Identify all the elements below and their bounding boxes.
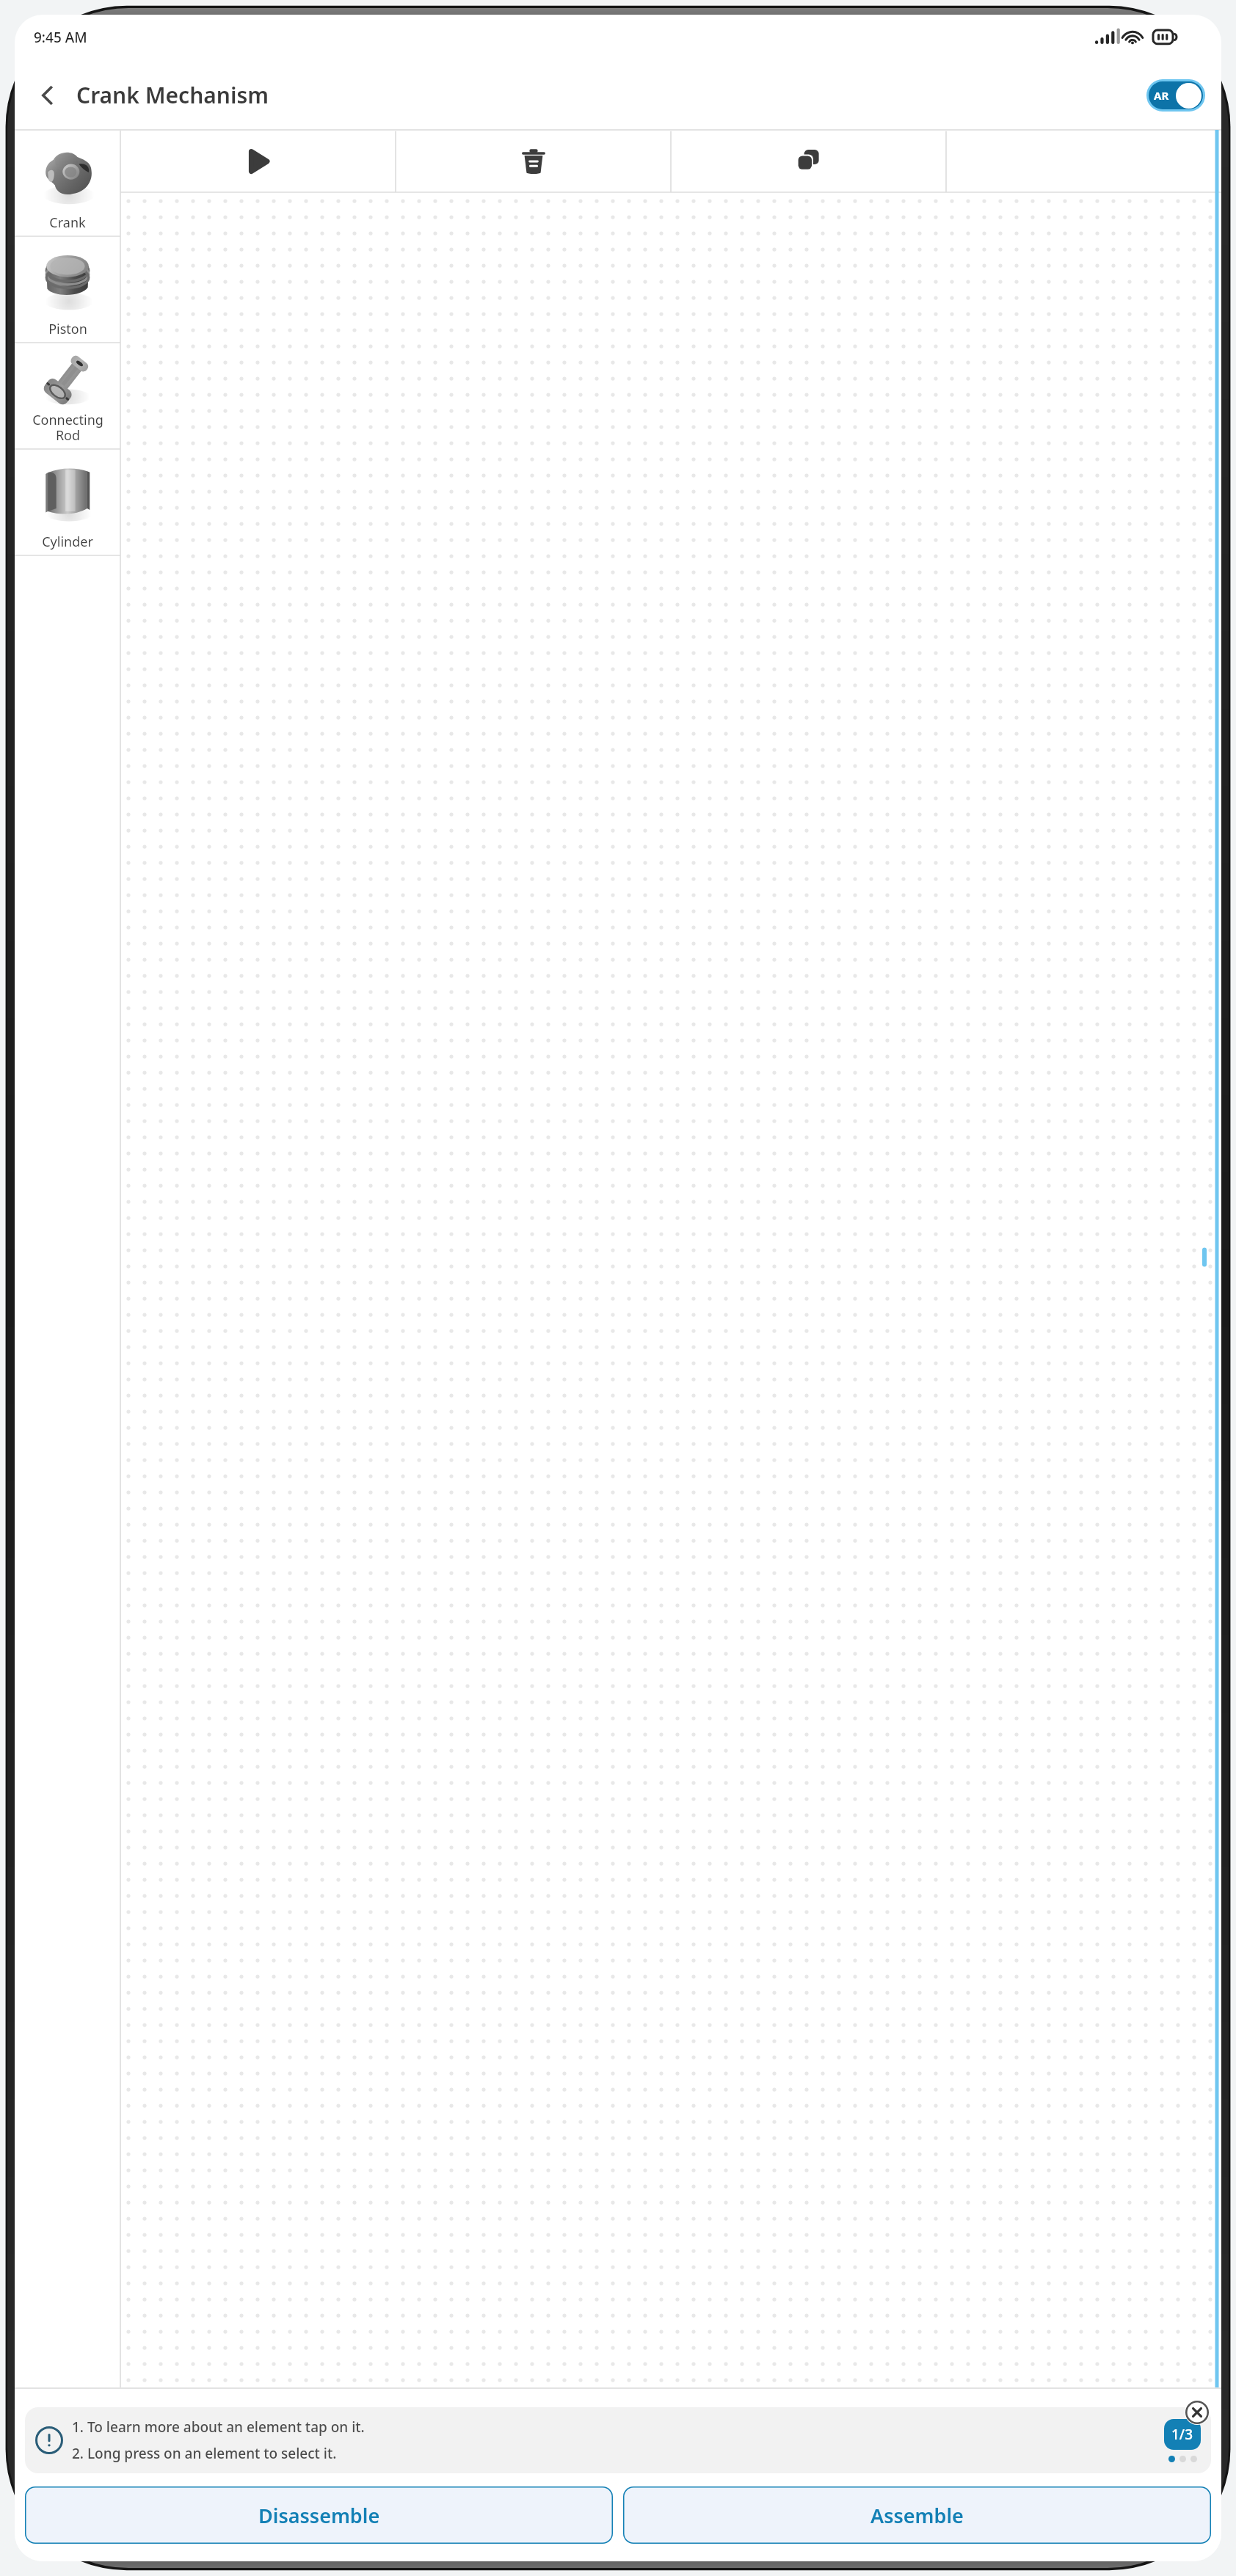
- button[interactable]: Connecting Rod: [15, 343, 120, 449]
- staticText: 1. To learn more about an element tap on…: [72, 2418, 365, 2437]
- staticText: Connecting Rod: [32, 411, 103, 445]
- button[interactable]: Disassemble: [25, 2486, 613, 2544]
- button[interactable]: Duplicate: [671, 130, 946, 192]
- button[interactable]: Back: [28, 75, 69, 116]
- button[interactable]: Play: [120, 130, 396, 192]
- button[interactable]: AR mode toggle: [1149, 81, 1203, 109]
- staticText: Piston: [48, 320, 87, 338]
- staticText: 1/3: [1171, 2425, 1193, 2444]
- button[interactable]: [120, 192, 1221, 2388]
- button[interactable]: Crank: [15, 130, 120, 236]
- button[interactable]: Assemble: [623, 2486, 1211, 2544]
- staticText: Cylinder: [42, 533, 93, 551]
- staticText: Assemble: [870, 2502, 964, 2529]
- button[interactable]: Close tip: [1185, 2400, 1210, 2425]
- button[interactable]: Piston: [15, 236, 120, 343]
- staticText: AR: [1154, 88, 1169, 103]
- staticText: 9:45 AM: [34, 28, 87, 47]
- staticText: 2. Long press on an element to select it…: [72, 2444, 337, 2463]
- staticText: Crank Mechanism: [76, 80, 269, 110]
- button[interactable]: 1. To learn more about an element tap on…: [25, 2407, 1211, 2473]
- staticText: Crank: [49, 214, 86, 232]
- button[interactable]: Delete: [396, 130, 671, 192]
- button[interactable]: Cylinder: [15, 449, 120, 555]
- staticText: Disassemble: [258, 2502, 380, 2529]
